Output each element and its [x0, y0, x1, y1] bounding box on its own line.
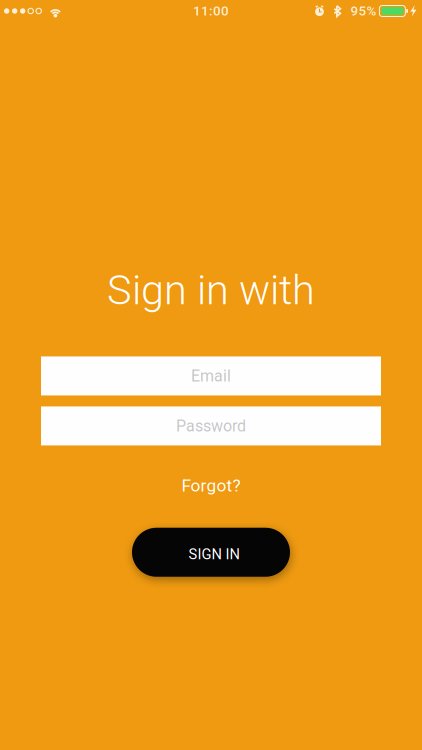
staticText: Password — [176, 417, 246, 435]
staticText: 95% — [350, 3, 376, 19]
button[interactable]: Forgot? — [167, 471, 254, 500]
staticText: Sign in with — [107, 266, 315, 314]
button[interactable]: SIGN IN — [132, 528, 290, 577]
staticText: 11:00 — [193, 3, 229, 19]
staticText: Forgot? — [181, 475, 240, 496]
button[interactable]: Email — [41, 356, 381, 395]
staticText: Email — [191, 367, 231, 385]
button[interactable]: Password — [41, 406, 381, 445]
staticText: SIGN IN — [188, 546, 239, 563]
